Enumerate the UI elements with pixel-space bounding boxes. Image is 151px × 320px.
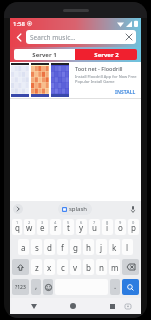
staticText: Server 1 (32, 51, 57, 59)
button[interactable]: o (115, 219, 126, 235)
staticText: x (47, 262, 52, 273)
button[interactable]: Voice input (128, 204, 138, 214)
staticText: 2 (28, 220, 31, 225)
staticText: 4 (54, 220, 57, 225)
staticText: y (79, 222, 84, 233)
button[interactable]: a (18, 239, 29, 255)
staticText: 6 (80, 220, 83, 225)
button[interactable]: Shift (12, 259, 29, 275)
staticText: , (35, 280, 38, 291)
button[interactable]: x (44, 259, 55, 275)
button[interactable]: g (70, 239, 81, 255)
button[interactable]: Recent apps (105, 299, 119, 313)
staticText: r (54, 222, 58, 233)
button[interactable]: b (83, 259, 94, 275)
staticText: 1 (16, 220, 19, 225)
button[interactable]: f (57, 239, 68, 255)
staticText: a (21, 242, 26, 253)
button[interactable]: k (109, 239, 120, 255)
staticText: b (86, 262, 91, 273)
staticText: INSTALL (115, 89, 136, 96)
button[interactable]: Hide keyboard (122, 300, 134, 312)
button[interactable]: s (31, 239, 42, 255)
button[interactable]: w (24, 219, 35, 235)
button[interactable]: r (50, 219, 61, 235)
staticText: 0 (132, 220, 135, 225)
staticText: 5 (67, 220, 70, 225)
staticText: n (99, 262, 104, 273)
button[interactable]: u (89, 219, 100, 235)
button[interactable]: . (110, 279, 120, 295)
staticText: Toot net - Floodrill (75, 65, 123, 72)
button[interactable]: m (109, 259, 120, 275)
staticText: Server 2 (94, 51, 119, 59)
staticText: . (114, 280, 117, 291)
button[interactable]: Back (12, 30, 26, 44)
staticText: 3 (41, 220, 44, 225)
button[interactable]: Backspace (122, 259, 139, 275)
staticText: 1:58 (13, 20, 25, 28)
staticText: Popular Install Game (75, 79, 115, 84)
staticText: 7 (93, 220, 96, 225)
staticText: 9 (119, 220, 122, 225)
staticText: d (47, 242, 52, 253)
staticText: o (118, 222, 123, 233)
staticText: l (126, 242, 129, 253)
button[interactable]: Toot net - Floodrill (10, 62, 141, 98)
button[interactable]: INSTALL (113, 87, 138, 98)
staticText: f (61, 242, 64, 253)
button[interactable]: t (63, 219, 74, 235)
staticText: w (26, 222, 33, 233)
button[interactable]: e (37, 219, 48, 235)
staticText: Search music... (30, 33, 76, 42)
staticText: e (40, 222, 45, 233)
staticText: m (111, 262, 119, 273)
staticText: c (61, 262, 65, 273)
staticText: p (131, 222, 136, 233)
button[interactable]: h (83, 239, 94, 255)
button[interactable]: ?123 (12, 279, 29, 295)
button[interactable]: d (44, 239, 55, 255)
button[interactable]: v (70, 259, 81, 275)
staticText: z (35, 262, 39, 273)
button[interactable]: c (57, 259, 68, 275)
button[interactable]: Home (66, 299, 80, 313)
staticText: ?123 (15, 284, 26, 291)
button[interactable]: y (76, 219, 87, 235)
button[interactable]: , (31, 279, 41, 295)
button[interactable]: Server 2 (75, 49, 137, 60)
staticText: 8 (106, 220, 109, 225)
button[interactable]: Back (27, 299, 41, 313)
staticText: q (15, 222, 20, 233)
staticText: i (106, 222, 109, 233)
staticText: k (112, 242, 117, 253)
button[interactable]: p (128, 219, 139, 235)
button[interactable]: z (31, 259, 42, 275)
button[interactable]: Expand suggestions (13, 204, 23, 214)
button[interactable]: i (102, 219, 113, 235)
staticText: h (86, 242, 91, 253)
button[interactable]: Emoji (43, 279, 53, 295)
button[interactable]: l (122, 239, 133, 255)
button[interactable]: j (96, 239, 107, 255)
staticText: t (67, 222, 70, 233)
button[interactable]: Search music... (26, 30, 136, 44)
button[interactable]: splash (58, 203, 92, 215)
button[interactable]: Search (122, 279, 139, 295)
staticText: splash (69, 205, 88, 213)
staticText: j (100, 242, 103, 253)
staticText: s (35, 242, 39, 253)
staticText: g (73, 242, 78, 253)
staticText: u (92, 222, 97, 233)
staticText: Install Floodrill App for Now Free (75, 74, 137, 79)
button[interactable]: q (12, 219, 22, 235)
button[interactable]: n (96, 259, 107, 275)
staticText: v (73, 262, 78, 273)
button[interactable]: Server 1 (14, 49, 75, 60)
